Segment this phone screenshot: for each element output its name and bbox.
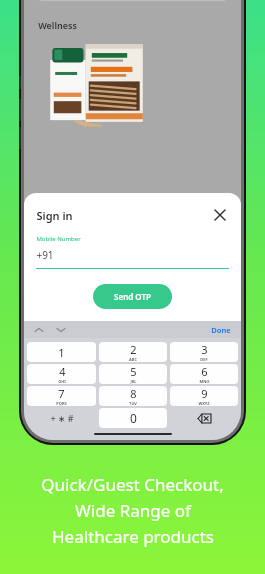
staticText: Wide Range of: [75, 499, 191, 522]
button[interactable]: Done: [209, 325, 233, 335]
staticText: 2: [130, 342, 137, 357]
button[interactable]: Backspace: [170, 407, 238, 429]
staticText: Wellness: [38, 19, 77, 31]
staticText: 5: [130, 364, 137, 379]
staticText: 6: [201, 364, 208, 379]
button[interactable]: Next field: [54, 323, 68, 337]
staticText: MNO: [199, 379, 210, 384]
staticText: 4: [59, 364, 66, 379]
button[interactable]: 3: [170, 342, 238, 362]
button[interactable]: Previous field: [32, 323, 46, 337]
staticText: Done: [211, 325, 231, 335]
button[interactable]: 1: [27, 342, 96, 362]
staticText: PQRS: [56, 401, 67, 406]
button[interactable]: 9: [170, 386, 238, 406]
staticText: 8: [130, 386, 137, 401]
button[interactable]: 2: [99, 342, 167, 362]
staticText: TUV: [129, 401, 137, 406]
staticText: WXYZ: [198, 401, 210, 406]
button[interactable]: 4: [27, 364, 96, 384]
staticText: 9: [201, 386, 208, 401]
staticText: Quick/Guest Checkout,: [41, 473, 224, 496]
staticText: +91: [36, 248, 54, 262]
staticText: 7: [58, 386, 65, 401]
staticText: 0: [130, 410, 137, 426]
button[interactable]: 8: [99, 386, 167, 406]
staticText: + ∗ #: [50, 412, 74, 424]
staticText: ABC: [129, 357, 137, 362]
staticText: Sign in: [36, 208, 73, 223]
button[interactable]: + ∗ #: [27, 407, 96, 429]
button[interactable]: 6: [170, 364, 238, 384]
staticText: JKL: [130, 379, 137, 384]
staticText: DEF: [200, 357, 208, 362]
button[interactable]: 5: [99, 364, 167, 384]
staticText: Mobile Number: [36, 235, 81, 243]
staticText: 1: [58, 345, 65, 360]
button[interactable]: Send OTP: [93, 284, 172, 309]
staticText: 3: [201, 342, 208, 357]
staticText: Healthcare products: [52, 525, 214, 548]
button[interactable]: +91: [36, 248, 229, 262]
button[interactable]: 0: [99, 408, 167, 428]
staticText: Send OTP: [114, 291, 151, 302]
button[interactable]: 7: [27, 386, 96, 406]
button[interactable]: Close: [211, 206, 229, 224]
staticText: GHI: [58, 379, 66, 384]
